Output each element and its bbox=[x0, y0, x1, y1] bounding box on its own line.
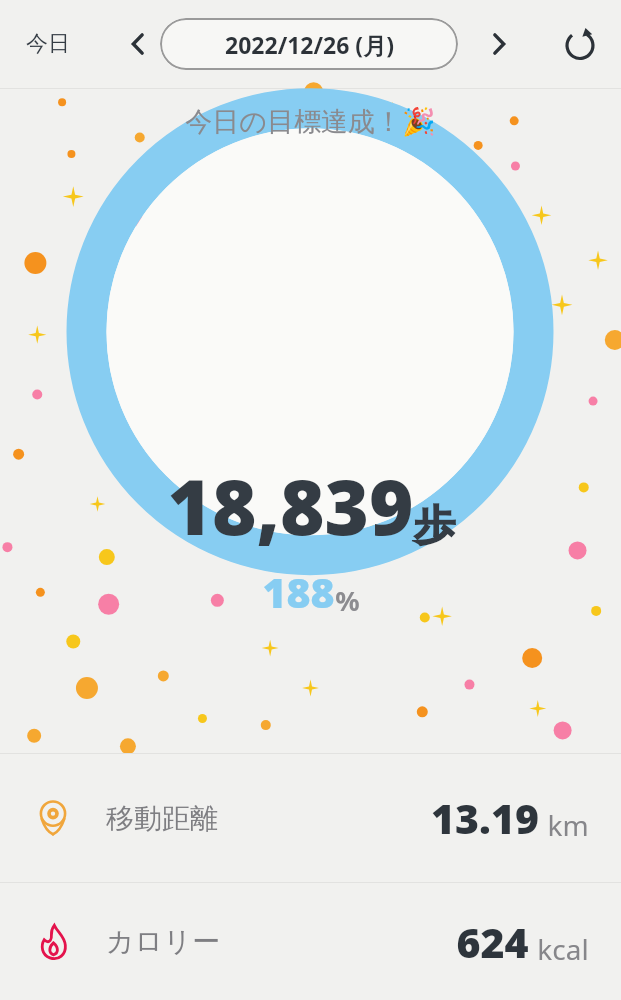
button[interactable]: Previous day bbox=[112, 18, 164, 70]
button[interactable]: Next day bbox=[473, 18, 525, 70]
staticText: 13.19 bbox=[431, 790, 539, 846]
staticText: 18,839 bbox=[167, 454, 414, 558]
button[interactable]: Refresh bbox=[551, 15, 609, 73]
staticText: km bbox=[547, 806, 589, 844]
staticText: 今日 bbox=[26, 30, 70, 58]
staticText: 移動距離 bbox=[106, 801, 218, 836]
staticText: カロリー bbox=[106, 924, 220, 959]
staticText: 624 bbox=[456, 914, 529, 970]
staticText: 188 bbox=[262, 564, 335, 620]
staticText: 2022/12/26 (月) bbox=[225, 29, 394, 60]
button[interactable]: 移動距離 bbox=[0, 754, 621, 882]
staticText: kcal bbox=[537, 930, 589, 968]
staticText: % bbox=[335, 582, 360, 619]
button[interactable]: カロリー bbox=[0, 883, 621, 1000]
staticText: 今日の目標達成！🎉 bbox=[185, 105, 436, 139]
button[interactable]: 今日 bbox=[16, 22, 80, 66]
button[interactable]: 2022/12/26 (月) bbox=[160, 18, 458, 70]
staticText: 歩 bbox=[414, 500, 455, 552]
